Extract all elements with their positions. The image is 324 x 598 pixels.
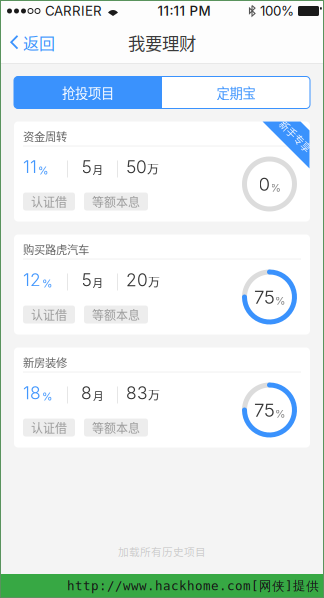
staticText: 加载所有历史项目 [118,544,206,559]
staticText: CARRIER [45,3,102,19]
staticText: 8 [81,382,92,403]
staticText: 20 [126,269,148,290]
staticText: 新房装修 [23,354,67,370]
staticText: % [38,164,48,177]
staticText: 11:11 PM [157,3,210,19]
staticText: 75 [254,399,275,421]
staticText: 等额本息 [92,193,140,210]
staticText: 万 [147,160,159,177]
button[interactable]: 抢投项目 [14,76,162,108]
staticText: 5 [81,269,91,290]
staticText: http://www.hackhome.com[网侠]提供 [67,578,319,594]
staticText: % [275,294,285,307]
staticText: 万 [148,386,160,403]
button[interactable]: 新房装修 [14,347,310,447]
staticText: 等额本息 [92,419,140,436]
staticText: 认证借 [31,306,67,323]
staticText: 等额本息 [92,306,140,323]
staticText: % [270,181,280,194]
staticText: 返回 [23,31,55,54]
button[interactable]: 资金周转 [14,121,310,221]
staticText: 认证借 [31,419,67,436]
staticText: 认证借 [31,193,67,210]
staticText: 定期宝 [216,83,255,102]
staticText: 50 [126,156,147,177]
button[interactable]: 购买路虎汽车 [14,234,310,334]
staticText: % [42,390,52,403]
staticText: 月 [92,161,103,177]
staticText: 月 [92,274,103,290]
staticText: 75 [254,286,275,308]
staticText: % [275,407,285,420]
staticText: % [42,277,52,290]
staticText: 11 [23,156,37,177]
button[interactable]: 返回 [0,22,67,62]
staticText: 抢投项目 [62,83,114,102]
staticText: 购买路虎汽车 [23,241,89,257]
staticText: 5 [81,156,91,177]
staticText: 资金周转 [23,128,67,144]
staticText: 新手专享 [275,129,315,143]
staticText: 18 [23,382,41,403]
staticText: 万 [148,273,160,290]
staticText: 100% [260,3,294,19]
staticText: 12 [23,269,41,290]
button[interactable]: 定期宝 [162,76,310,108]
staticText: 83 [126,382,148,403]
staticText: 0 [258,173,270,195]
staticText: 月 [93,387,104,403]
staticText: 我要理财 [128,30,196,55]
